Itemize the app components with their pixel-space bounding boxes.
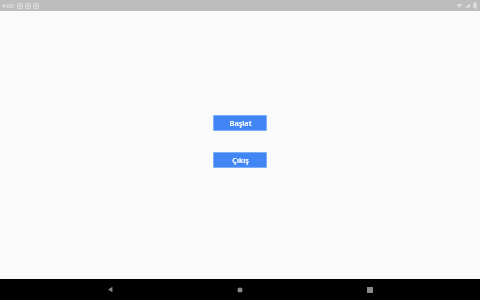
button[interactable]: Başlat — [214, 116, 266, 130]
staticText: 4:00 — [2, 2, 14, 10]
button[interactable]: Recent apps — [350, 279, 390, 300]
button[interactable]: Back — [90, 279, 130, 300]
button[interactable]: Home — [220, 279, 260, 300]
staticText: Çıkış — [232, 155, 249, 165]
button[interactable]: Çıkış — [214, 153, 266, 167]
staticText: Başlat — [229, 118, 252, 128]
